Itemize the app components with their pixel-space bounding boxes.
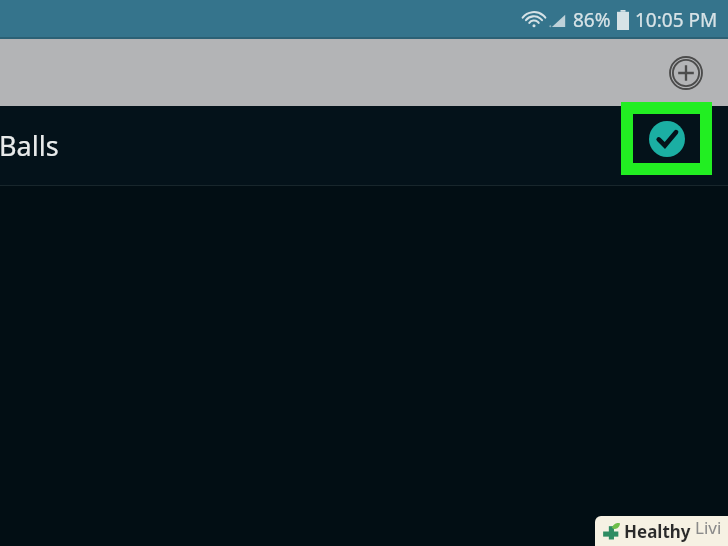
staticText: 86% bbox=[573, 7, 611, 33]
staticText: Healthy bbox=[624, 520, 691, 543]
button[interactable]: Balls bbox=[0, 106, 728, 185]
staticText: Balls bbox=[0, 127, 59, 164]
button[interactable]: Add bbox=[662, 49, 710, 97]
staticText: 10:05 PM bbox=[635, 7, 718, 33]
button[interactable]: Selected bbox=[633, 114, 700, 163]
staticText: Living bbox=[695, 516, 728, 546]
